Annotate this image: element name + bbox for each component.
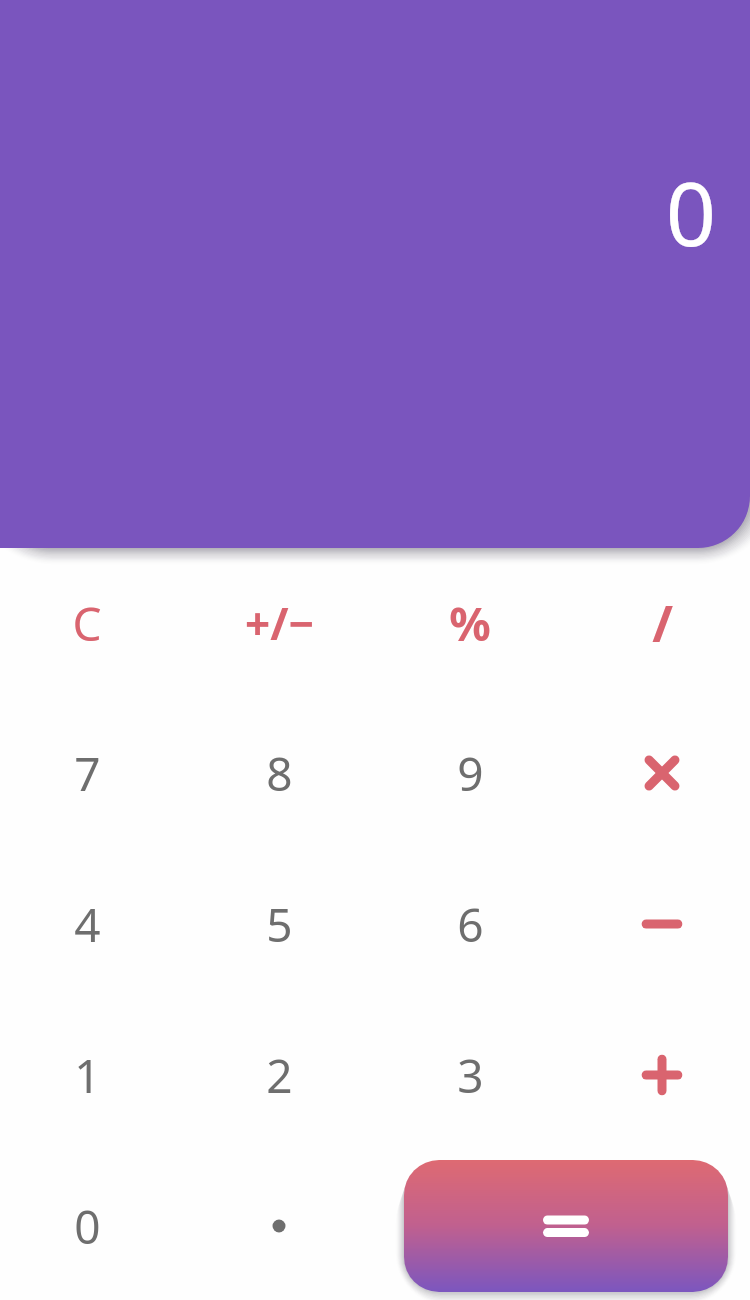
- staticText: 7: [74, 742, 101, 805]
- staticText: 2: [266, 1044, 293, 1107]
- button[interactable]: 0: [0, 1151, 183, 1300]
- button[interactable]: 6: [374, 849, 566, 999]
- button[interactable]: C: [0, 548, 183, 698]
- staticText: 8: [266, 742, 293, 805]
- staticText: 9: [457, 742, 484, 805]
- button[interactable]: 5: [183, 849, 375, 999]
- staticText: C: [72, 592, 102, 655]
- button[interactable]: +/−: [183, 548, 375, 698]
- staticText: %: [449, 592, 491, 655]
- button[interactable]: /: [566, 548, 750, 698]
- staticText: 5: [266, 893, 293, 956]
- staticText: 0: [665, 152, 716, 272]
- staticText: +/−: [245, 593, 314, 653]
- button[interactable]: 2: [183, 1000, 375, 1150]
- button[interactable]: 1: [0, 1000, 183, 1150]
- staticText: 0: [74, 1195, 101, 1258]
- button[interactable]: 8: [183, 698, 375, 848]
- button[interactable]: Multiply: [566, 698, 750, 848]
- button[interactable]: 9: [374, 698, 566, 848]
- staticText: /: [652, 589, 673, 657]
- button[interactable]: Minus: [566, 849, 750, 999]
- staticText: 6: [457, 893, 484, 956]
- button[interactable]: 3: [374, 1000, 566, 1150]
- button[interactable]: 7: [0, 698, 183, 848]
- button[interactable]: 4: [0, 849, 183, 999]
- button[interactable]: Equals: [404, 1160, 728, 1292]
- button[interactable]: Plus: [566, 1000, 750, 1150]
- staticText: 1: [74, 1044, 101, 1107]
- staticText: 3: [457, 1044, 484, 1107]
- button[interactable]: Decimal point: [183, 1151, 375, 1300]
- button[interactable]: %: [374, 548, 566, 698]
- staticText: 4: [74, 893, 101, 956]
